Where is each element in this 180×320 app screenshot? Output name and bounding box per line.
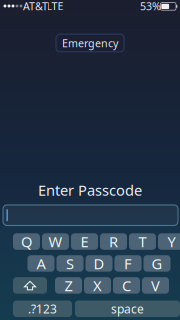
staticText: Enter Passcode <box>38 180 142 200</box>
staticText: E <box>80 232 88 251</box>
button[interactable]: R <box>100 233 127 250</box>
staticText: Emergency <box>62 36 118 50</box>
staticText: LTE <box>46 0 63 13</box>
staticText: A <box>36 254 45 273</box>
button[interactable]: Emergency <box>56 34 124 52</box>
button[interactable]: D <box>85 255 112 272</box>
staticText: C <box>122 276 131 295</box>
staticText: T <box>138 232 146 251</box>
staticText: .?123 <box>28 301 57 317</box>
button[interactable]: T <box>129 233 156 250</box>
staticText: F <box>124 254 132 273</box>
button[interactable]: Q <box>13 233 40 250</box>
staticText: G <box>151 254 162 273</box>
staticText: D <box>93 254 104 273</box>
staticText: 53% <box>140 0 161 13</box>
staticText: Q <box>21 232 32 251</box>
button[interactable]: Y <box>158 233 180 250</box>
button[interactable]: W <box>42 233 69 250</box>
button[interactable]: V <box>142 277 169 294</box>
button[interactable]: F <box>114 255 141 272</box>
button[interactable]: space <box>75 300 180 317</box>
button[interactable]: S <box>56 255 83 272</box>
button[interactable]: C <box>113 277 140 294</box>
staticText: Y <box>167 232 175 251</box>
button[interactable]: .?123 <box>13 300 72 317</box>
button[interactable]: Z <box>55 277 82 294</box>
button[interactable]: G <box>143 255 170 272</box>
staticText: AT&T <box>23 0 48 13</box>
staticText: R <box>109 232 118 251</box>
staticText: W <box>48 232 62 251</box>
staticText: Z <box>64 276 72 295</box>
button[interactable]: X <box>84 277 111 294</box>
button[interactable]: A <box>27 255 54 272</box>
staticText: X <box>93 276 102 295</box>
staticText: S <box>66 254 74 273</box>
button[interactable]: Shift <box>13 277 47 294</box>
staticText: space <box>111 301 144 317</box>
button[interactable]: E <box>71 233 98 250</box>
staticText: V <box>151 276 160 295</box>
